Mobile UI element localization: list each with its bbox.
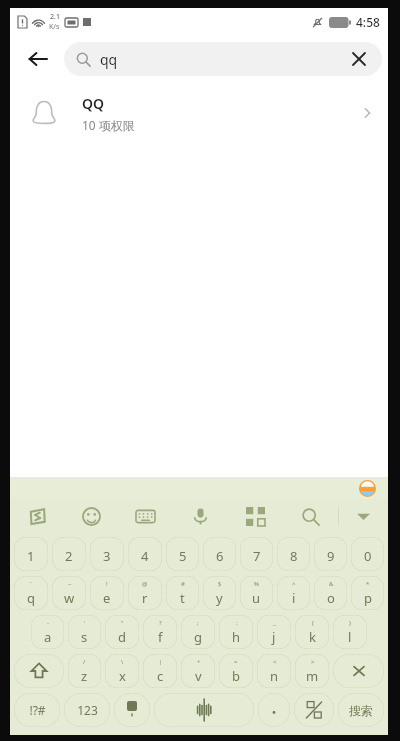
button[interactable]: Back	[16, 37, 60, 81]
button[interactable]: 2	[52, 537, 86, 571]
button[interactable]: >	[295, 654, 329, 688]
button[interactable]: `	[14, 576, 48, 610]
staticText: @	[142, 580, 148, 588]
button[interactable]: 0	[351, 537, 384, 571]
button[interactable]: 1	[14, 537, 48, 571]
button[interactable]: 9	[314, 537, 347, 571]
staticText: 10 项权限	[82, 117, 135, 133]
button[interactable]: Apps	[228, 499, 283, 533]
button[interactable]: Sogou	[10, 499, 64, 533]
staticText: 4:58	[356, 14, 380, 30]
staticText: x	[119, 667, 126, 685]
button[interactable]: !?#	[14, 693, 60, 727]
staticText: -	[47, 619, 49, 627]
button[interactable]: 8	[277, 537, 310, 571]
button[interactable]: /	[68, 654, 101, 688]
button[interactable]: 搜索	[338, 693, 384, 727]
staticText: |	[159, 658, 163, 666]
staticText: 搜索	[349, 703, 373, 718]
staticText: d	[118, 628, 126, 646]
button[interactable]: @	[128, 576, 162, 610]
staticText: '	[84, 619, 86, 627]
staticText: qq	[100, 50, 118, 69]
staticText: <	[273, 658, 277, 666]
button[interactable]: Clear	[348, 48, 370, 70]
button[interactable]: ^	[277, 576, 310, 610]
staticText: 0	[364, 547, 372, 565]
staticText: g	[194, 628, 202, 646]
staticText: f	[158, 628, 163, 646]
staticText: w	[64, 589, 75, 607]
staticText: (	[312, 619, 314, 627]
staticText: /	[83, 658, 86, 666]
button[interactable]: Voice input	[173, 499, 228, 533]
button[interactable]: |	[143, 654, 177, 688]
staticText: #	[181, 580, 185, 588]
button[interactable]: Period	[258, 693, 290, 727]
button[interactable]: QQ	[10, 82, 388, 144]
button[interactable]: Keyboard	[118, 499, 173, 533]
staticText: k	[309, 628, 316, 646]
staticText: v	[195, 667, 202, 685]
staticText: r	[142, 589, 148, 607]
staticText: `	[30, 580, 32, 588]
staticText: 6	[216, 547, 224, 565]
button[interactable]: _	[257, 615, 291, 649]
button[interactable]: $	[203, 576, 236, 610]
button[interactable]: 7	[240, 537, 273, 571]
button[interactable]: !	[90, 576, 124, 610]
staticText: _	[273, 619, 276, 627]
button[interactable]: Emoji	[64, 499, 118, 533]
button[interactable]: &	[314, 576, 347, 610]
staticText: K/s	[49, 22, 60, 32]
staticText: =	[234, 658, 238, 666]
button[interactable]: (	[295, 615, 329, 649]
staticText: m	[306, 667, 319, 685]
staticText: ?	[159, 619, 162, 627]
staticText: s	[81, 628, 88, 646]
staticText: 3	[103, 547, 111, 565]
button[interactable]: Sticker	[359, 480, 376, 497]
button[interactable]: +	[181, 654, 215, 688]
button[interactable]: Chinese English toggle	[294, 693, 334, 727]
button[interactable]: qq	[64, 42, 382, 76]
button[interactable]: Shift	[14, 654, 64, 688]
button[interactable]: 123	[64, 693, 110, 727]
button[interactable]: 4	[128, 537, 162, 571]
button[interactable]: %	[240, 576, 273, 610]
staticText: QQ	[82, 94, 105, 113]
staticText: b	[232, 667, 240, 685]
button[interactable]: Backspace	[333, 654, 384, 688]
button[interactable]: -	[31, 615, 64, 649]
staticText: 2.1	[50, 12, 60, 22]
staticText: 9	[327, 547, 335, 565]
staticText: 7	[253, 547, 261, 565]
button[interactable]: Collapse keyboard	[339, 499, 388, 533]
staticText: a	[44, 628, 52, 646]
staticText: j	[272, 628, 276, 646]
button[interactable]: 5	[166, 537, 199, 571]
staticText: o	[327, 589, 335, 607]
staticText: l	[348, 628, 352, 646]
button[interactable]: :	[219, 615, 253, 649]
button[interactable]: 6	[203, 537, 236, 571]
staticText: z	[81, 667, 88, 685]
button[interactable]: \	[105, 654, 139, 688]
button[interactable]: ~	[52, 576, 86, 610]
staticText: 4	[141, 547, 149, 565]
button[interactable]: <	[257, 654, 291, 688]
button[interactable]: )	[333, 615, 367, 649]
button[interactable]: 3	[90, 537, 124, 571]
button[interactable]: Space	[154, 693, 254, 727]
button[interactable]: '	[68, 615, 101, 649]
button[interactable]: =	[219, 654, 253, 688]
staticText: h	[232, 628, 241, 646]
button[interactable]: #	[166, 576, 199, 610]
button[interactable]: "	[105, 615, 139, 649]
button[interactable]: ;	[181, 615, 215, 649]
button[interactable]: Search	[283, 499, 338, 533]
button[interactable]: ?	[143, 615, 177, 649]
staticText: )	[349, 619, 351, 627]
button[interactable]: *	[351, 576, 384, 610]
button[interactable]: Input method	[114, 693, 150, 727]
